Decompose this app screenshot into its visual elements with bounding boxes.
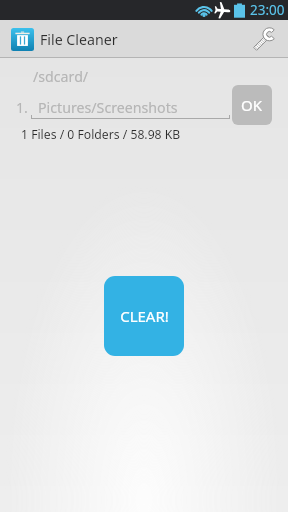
staticText: Pictures/Screenshots [38,98,178,117]
button[interactable]: CLEAR! [104,276,184,356]
staticText: OK [241,95,263,115]
staticText: CLEAR! [120,306,169,326]
staticText: 1. [16,98,28,117]
button[interactable]: OK [232,85,272,125]
button[interactable]: Settings [248,22,282,56]
staticText: 23:00 [250,1,285,19]
staticText: 1 Files / 0 Folders / 58.98 KB [21,126,181,143]
staticText: /sdcard/ [33,67,89,86]
staticText: File Cleaner [40,30,118,49]
